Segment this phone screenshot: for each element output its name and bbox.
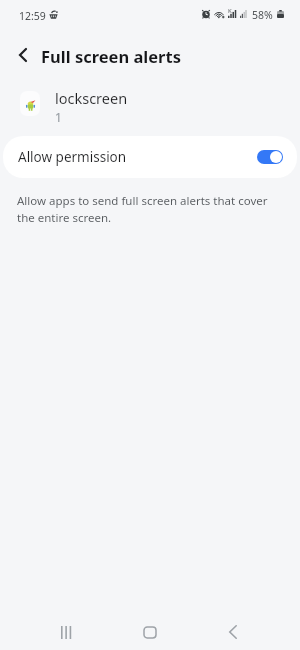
staticText: lockscreen (55, 88, 128, 108)
staticText: 1 (55, 109, 62, 125)
button[interactable]: lockscreen (0, 78, 300, 128)
staticText: 12:59 (19, 9, 46, 23)
button[interactable]: Allow permission (3, 136, 297, 178)
button[interactable]: Recents (42, 610, 90, 650)
staticText: K (228, 7, 232, 15)
staticText: 58% (252, 8, 273, 22)
button[interactable]: Back (209, 610, 257, 650)
staticText: Allow apps to send full screen alerts th… (17, 193, 274, 225)
staticText: Allow permission (18, 148, 127, 166)
staticText: Full screen alerts (41, 45, 181, 67)
button[interactable]: Home (126, 610, 174, 650)
button[interactable]: Back (9, 41, 37, 69)
